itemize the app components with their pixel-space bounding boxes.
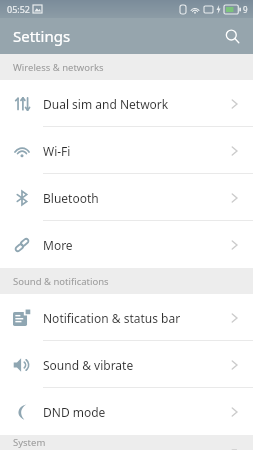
button[interactable]: Sound & vibrate xyxy=(0,341,253,388)
staticText: Settings xyxy=(13,26,71,46)
button[interactable]: Bluetooth xyxy=(0,174,253,221)
button[interactable]: Search xyxy=(219,23,245,49)
staticText: Wireless & networks xyxy=(13,61,104,74)
staticText: Notification & status bar xyxy=(43,310,181,326)
staticText: Wi-Fi xyxy=(43,143,71,159)
staticText: DND mode xyxy=(43,404,106,420)
button[interactable]: Wi-Fi xyxy=(0,127,253,174)
staticText: 9 xyxy=(243,4,248,15)
button[interactable]: DND mode xyxy=(0,388,253,435)
button[interactable]: Dual sim and Network xyxy=(0,80,253,127)
button[interactable]: More xyxy=(0,221,253,268)
staticText: Sound & vibrate xyxy=(43,357,134,373)
staticText: 05:52 xyxy=(7,3,31,15)
button[interactable]: Notification & status bar xyxy=(0,294,253,341)
staticText: Dual sim and Network xyxy=(43,96,169,112)
staticText: Sound & notifications xyxy=(13,275,109,288)
staticText: Bluetooth xyxy=(43,190,99,206)
staticText: System xyxy=(13,436,46,449)
staticText: More xyxy=(43,237,73,253)
